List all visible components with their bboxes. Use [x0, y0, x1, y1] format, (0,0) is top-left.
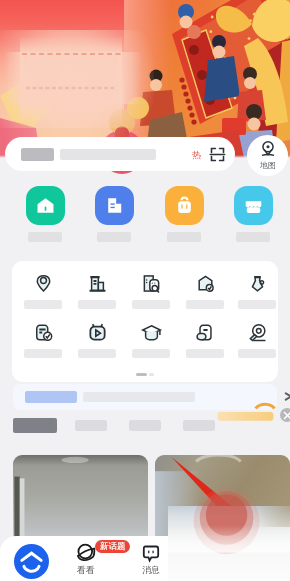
button[interactable]: 消息 — [134, 544, 168, 575]
other: More — [284, 392, 290, 401]
button[interactable] — [19, 322, 67, 358]
button[interactable] — [73, 322, 121, 358]
staticText: 地图 — [260, 160, 276, 170]
button[interactable] — [233, 322, 278, 358]
other: Scan QR code — [210, 147, 225, 162]
button[interactable] — [160, 186, 208, 242]
button[interactable] — [181, 273, 229, 309]
button[interactable] — [73, 273, 121, 309]
button[interactable] — [90, 186, 138, 242]
staticText: 新话题 — [100, 541, 126, 552]
button[interactable] — [229, 186, 277, 242]
button[interactable]: Home — [14, 544, 49, 579]
staticText: 消息 — [142, 564, 160, 575]
button[interactable] — [19, 273, 67, 309]
staticText: 热 — [192, 149, 201, 160]
button[interactable] — [21, 186, 69, 242]
button[interactable]: 看看 — [69, 544, 103, 575]
button[interactable]: 热 — [5, 137, 235, 171]
button[interactable] — [155, 455, 290, 545]
button[interactable] — [127, 322, 175, 358]
button[interactable]: 地图 — [247, 135, 288, 176]
staticText: 看看 — [77, 564, 95, 575]
button[interactable] — [181, 322, 229, 358]
button[interactable] — [13, 455, 148, 545]
button[interactable] — [13, 384, 277, 410]
button[interactable]: Close ad — [280, 408, 290, 422]
button[interactable] — [233, 273, 278, 309]
button[interactable] — [127, 273, 175, 309]
button[interactable] — [13, 418, 57, 433]
